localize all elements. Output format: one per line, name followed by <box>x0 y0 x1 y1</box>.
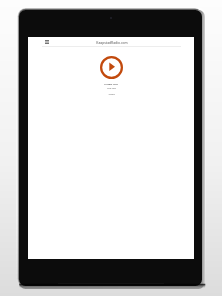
button[interactable]: KaapstadRadio.com <box>78 37 145 46</box>
button[interactable]: The Hot <box>28 85 194 95</box>
staticText: LISTEN LIVE <box>104 83 118 86</box>
staticText: KaapstadRadio.com <box>96 40 128 44</box>
button[interactable]: Open menu <box>41 37 52 46</box>
button[interactable]: Play live stream <box>100 56 123 79</box>
button[interactable]: LISTEN LIVE <box>28 82 194 86</box>
staticText: Artist <box>108 92 115 95</box>
staticText: The Hot <box>107 87 116 90</box>
